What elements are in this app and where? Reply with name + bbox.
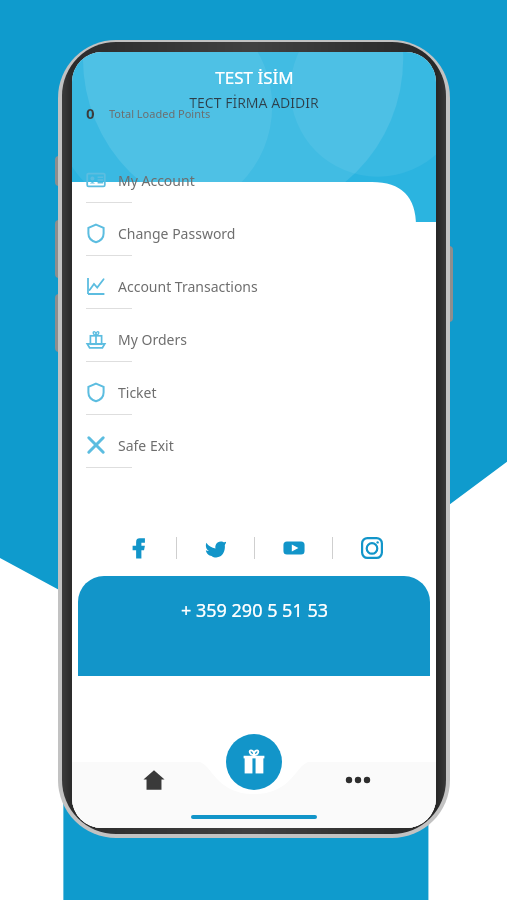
button[interactable]: More xyxy=(336,758,380,802)
button[interactable]: Twitter xyxy=(177,525,254,571)
staticText: 0 xyxy=(86,103,95,123)
staticText: My Account xyxy=(118,171,195,190)
staticText: + 359 290 5 51 53 xyxy=(181,598,328,623)
button[interactable]: Ticket xyxy=(72,370,436,423)
staticText: TECT FİRMA ADIDIR xyxy=(189,93,319,112)
button[interactable]: Account Transactions xyxy=(72,264,436,317)
button[interactable]: Safe Exit xyxy=(72,423,436,476)
staticText: Safe Exit xyxy=(118,436,174,455)
staticText: Change Password xyxy=(118,224,236,243)
button[interactable]: Change Password xyxy=(72,211,436,264)
button[interactable]: My Account xyxy=(72,158,436,211)
staticText: Account Transactions xyxy=(118,277,258,296)
button[interactable]: Home xyxy=(132,758,176,802)
button[interactable]: + 359 290 5 51 53 xyxy=(78,576,430,676)
staticText: Ticket xyxy=(118,383,157,402)
button[interactable]: Instagram xyxy=(333,525,410,571)
button[interactable]: Gifts xyxy=(226,734,282,790)
staticText: Total Loaded Points xyxy=(109,106,211,121)
button[interactable]: Facebook xyxy=(98,525,176,571)
staticText: TEST İSİM xyxy=(215,66,294,89)
button[interactable]: My Orders xyxy=(72,317,436,370)
staticText: My Orders xyxy=(118,330,187,349)
button[interactable]: YouTube xyxy=(255,525,332,571)
